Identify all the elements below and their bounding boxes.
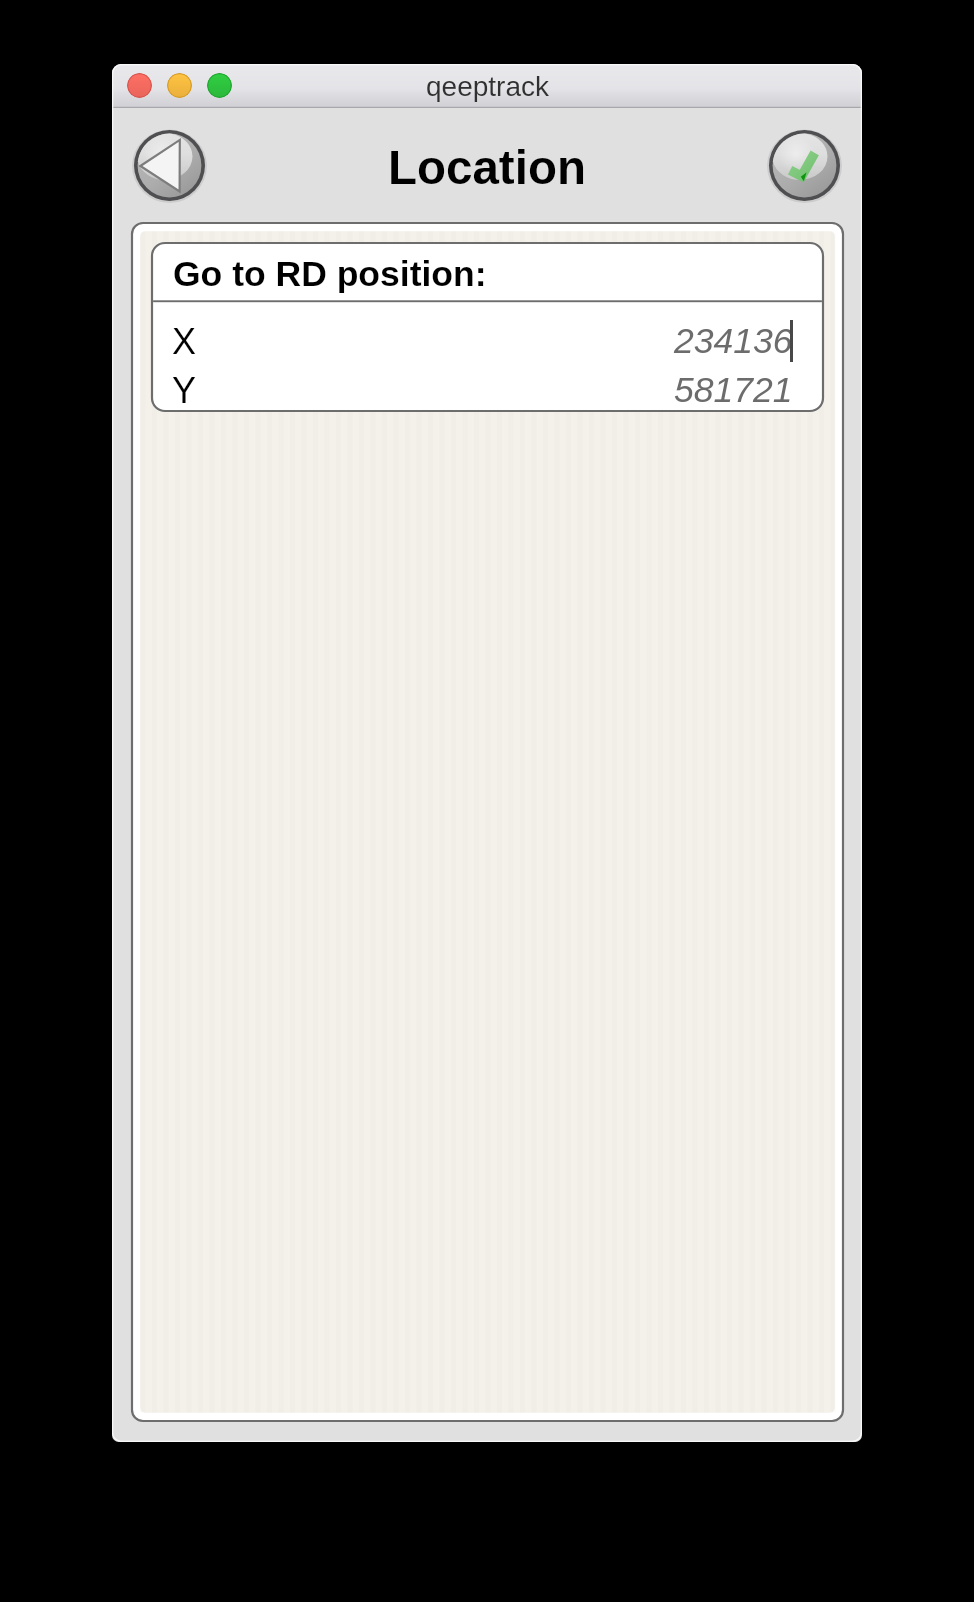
button[interactable]: window control <box>167 73 192 98</box>
button[interactable]: Y <box>152 365 823 413</box>
button[interactable]: Done <box>767 128 842 203</box>
staticText: Go to RD position: <box>173 254 487 294</box>
staticText: 234136 <box>674 321 793 361</box>
staticText: Location <box>388 141 586 194</box>
staticText: X <box>172 321 197 361</box>
button[interactable]: Back <box>132 128 207 203</box>
staticText: Y <box>172 370 197 410</box>
button[interactable]: window control <box>207 73 232 98</box>
staticText: 581721 <box>674 370 793 410</box>
button[interactable]: window control <box>127 73 152 98</box>
staticText: qeeptrack <box>426 71 549 102</box>
button[interactable]: X <box>152 316 823 364</box>
